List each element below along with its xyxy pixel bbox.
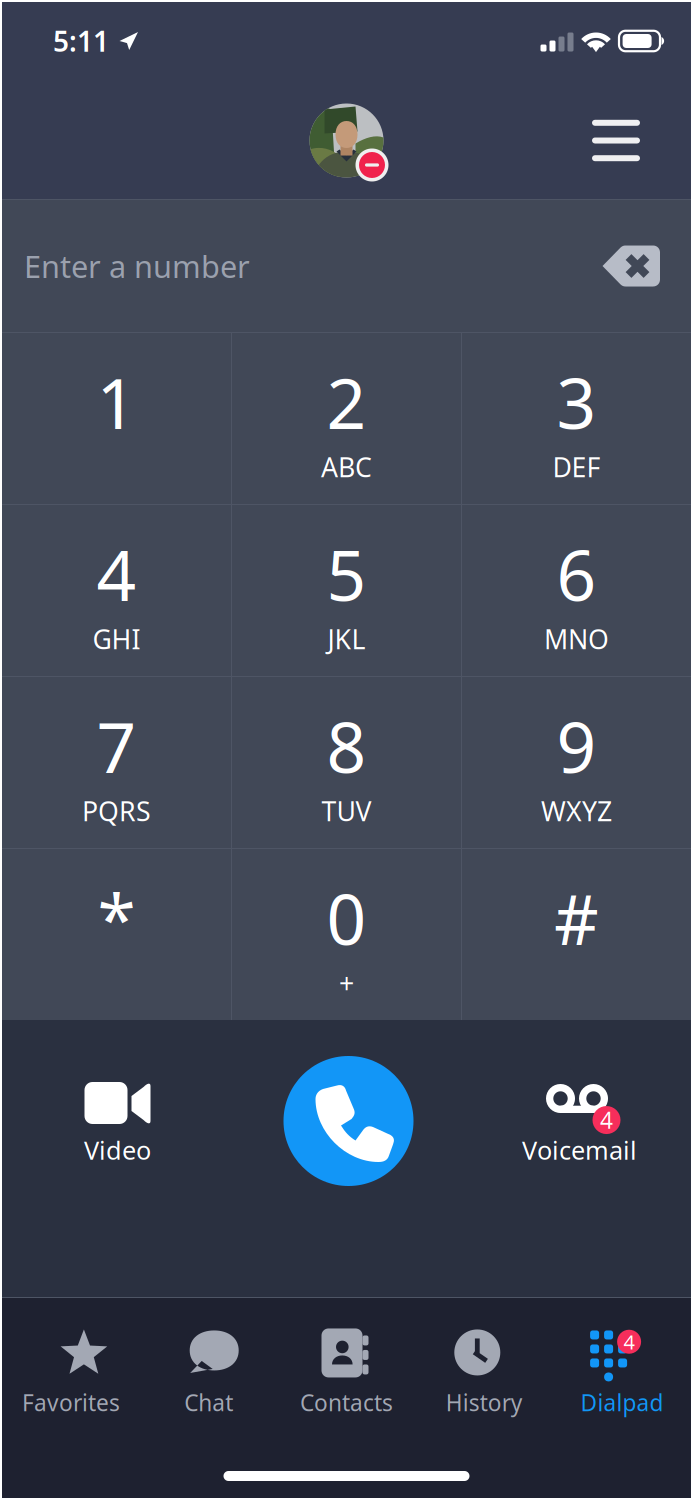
staticText: JKL: [327, 621, 365, 656]
button[interactable]: Delete: [602, 243, 662, 289]
staticText: 5:11: [53, 22, 109, 60]
staticText: PQRS: [82, 793, 151, 828]
staticText: GHI: [92, 621, 140, 656]
button[interactable]: Contacts: [278, 1298, 415, 1423]
staticText: 5: [326, 528, 366, 620]
staticText: 1: [96, 356, 136, 448]
staticText: Voicemail: [522, 1133, 637, 1167]
staticText: WXYZ: [541, 793, 612, 828]
button[interactable]: 6: [462, 505, 691, 676]
staticText: ABC: [321, 449, 372, 484]
staticText: Video: [84, 1133, 151, 1167]
button[interactable]: 9: [462, 677, 691, 848]
button[interactable]: History: [415, 1298, 553, 1423]
staticText: +: [339, 965, 354, 1000]
button[interactable]: 4: [464, 1020, 693, 1297]
button[interactable]: 0: [232, 849, 461, 1020]
staticText: #: [554, 872, 599, 964]
staticText: Enter a number: [24, 246, 250, 286]
staticText: 4: [600, 1105, 613, 1135]
staticText: DEF: [552, 449, 600, 484]
button[interactable]: 2: [232, 333, 461, 504]
staticText: 9: [556, 700, 596, 792]
button[interactable]: 4: [553, 1298, 691, 1423]
button[interactable]: Menu: [581, 105, 651, 175]
staticText: 4: [624, 1328, 635, 1355]
staticText: 7: [96, 700, 136, 792]
button[interactable]: 4: [2, 505, 231, 676]
button[interactable]: *: [2, 849, 231, 1020]
staticText: 0: [326, 872, 366, 964]
button[interactable]: Profile: [307, 101, 386, 179]
button[interactable]: 7: [2, 677, 231, 848]
button[interactable]: #: [462, 849, 691, 1020]
staticText: Favorites: [22, 1387, 120, 1417]
staticText: 2: [326, 356, 366, 448]
staticText: Contacts: [300, 1387, 393, 1417]
staticText: Chat: [184, 1387, 233, 1417]
button[interactable]: Favorites: [2, 1298, 140, 1423]
staticText: History: [446, 1387, 523, 1417]
button[interactable]: Call: [233, 1020, 464, 1297]
staticText: 8: [326, 700, 366, 792]
staticText: *: [97, 872, 135, 964]
button[interactable]: Video: [2, 1020, 233, 1297]
staticText: Dialpad: [581, 1387, 664, 1417]
button[interactable]: Chat: [140, 1298, 278, 1423]
button[interactable]: 1: [2, 333, 231, 504]
button[interactable]: 8: [232, 677, 461, 848]
staticText: MNO: [544, 621, 609, 656]
button[interactable]: 3: [462, 333, 691, 504]
staticText: 4: [96, 528, 136, 620]
staticText: 6: [556, 528, 596, 620]
button[interactable]: 5: [232, 505, 461, 676]
staticText: 3: [556, 356, 596, 448]
staticText: TUV: [321, 793, 371, 828]
